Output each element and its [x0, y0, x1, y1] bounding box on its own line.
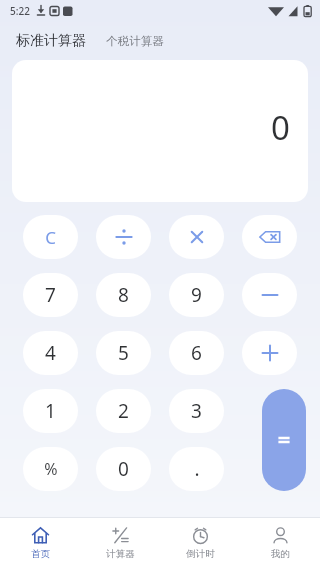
staticText: 9 — [191, 282, 202, 308]
staticText: 我的 — [271, 548, 290, 560]
staticText: 倒计时 — [186, 548, 215, 560]
staticText: 3 — [191, 398, 202, 424]
button[interactable]: Plus — [242, 331, 297, 375]
button[interactable]: 倒计时 — [160, 518, 240, 568]
staticText: 0 — [118, 456, 129, 482]
button[interactable]: 2 — [96, 389, 151, 433]
staticText: 7 — [45, 282, 56, 308]
button[interactable]: 0 — [96, 447, 151, 491]
button[interactable]: 1 — [23, 389, 78, 433]
button[interactable]: C — [23, 215, 78, 259]
button[interactable]: Backspace — [242, 215, 297, 259]
button[interactable]: Minus — [242, 273, 297, 317]
staticText: 8 — [118, 282, 129, 308]
button[interactable]: 7 — [23, 273, 78, 317]
staticText: C — [45, 226, 56, 249]
button[interactable]: 9 — [169, 273, 224, 317]
button[interactable]: 我的 — [240, 518, 320, 568]
staticText: 5:22 — [10, 4, 30, 18]
button[interactable]: 6 — [169, 331, 224, 375]
staticText: . — [194, 456, 200, 482]
button[interactable]: 4 — [23, 331, 78, 375]
staticText: 5 — [118, 340, 129, 366]
button[interactable]: Multiply — [169, 215, 224, 259]
button[interactable]: Equals — [262, 389, 306, 491]
staticText: 1 — [45, 398, 56, 424]
staticText: 6 — [191, 340, 202, 366]
button[interactable]: 标准计算器 — [14, 28, 88, 54]
button[interactable]: 8 — [96, 273, 151, 317]
staticText: 0 — [271, 105, 290, 150]
button[interactable]: Divide — [96, 215, 151, 259]
staticText: 4 — [45, 340, 56, 366]
staticText: % — [44, 458, 58, 480]
button[interactable]: % — [23, 447, 78, 491]
staticText: 个税计算器 — [106, 34, 164, 48]
staticText: 2 — [118, 398, 129, 424]
button[interactable]: 个税计算器 — [104, 30, 166, 52]
button[interactable]: 3 — [169, 389, 224, 433]
button[interactable]: 计算器 — [80, 518, 160, 568]
staticText: 首页 — [31, 548, 50, 560]
staticText: 标准计算器 — [16, 32, 86, 50]
button[interactable]: . — [169, 447, 224, 491]
staticText: 计算器 — [106, 548, 135, 560]
button[interactable]: 5 — [96, 331, 151, 375]
button[interactable]: 首页 — [0, 518, 80, 568]
